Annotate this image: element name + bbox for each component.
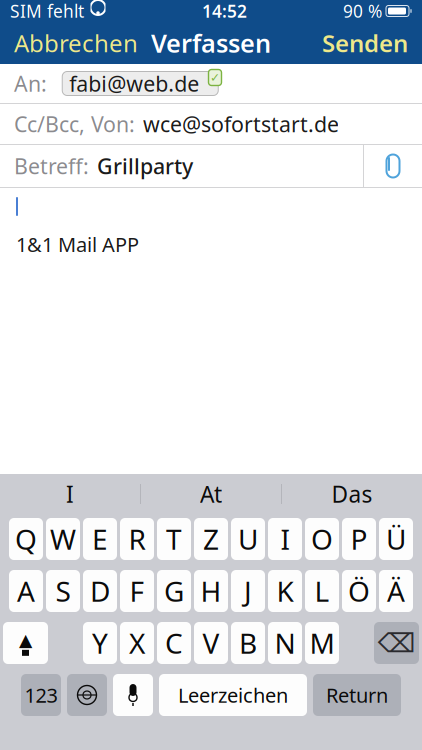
button[interactable]: Anhang hinzufügen	[364, 145, 422, 187]
button[interactable]: Cc/Bcc, Von:	[0, 104, 422, 144]
button[interactable]: Ü	[379, 518, 413, 560]
staticText: Z	[203, 520, 219, 558]
button[interactable]: Ä	[379, 570, 413, 612]
button[interactable]: Abbrechen	[0, 22, 152, 64]
staticText: Leerzeichen	[178, 682, 288, 708]
staticText: F	[129, 572, 144, 610]
button[interactable]: I	[0, 474, 140, 514]
staticText: U	[238, 520, 258, 558]
staticText: SIM fehlt	[10, 0, 84, 22]
button[interactable]: D	[83, 570, 117, 612]
button[interactable]: W	[46, 518, 80, 560]
button[interactable]: T	[157, 518, 191, 560]
button[interactable]: R	[120, 518, 154, 560]
button[interactable]: U	[231, 518, 265, 560]
staticText: V	[202, 624, 219, 662]
staticText: I	[280, 520, 289, 558]
button[interactable]: Umschalt	[3, 622, 48, 664]
staticText: Grillparty	[97, 152, 193, 180]
staticText: 123	[24, 682, 57, 708]
staticText: Abbrechen	[14, 27, 138, 59]
staticText: Cc/Bcc, Von:	[14, 110, 135, 138]
staticText: B	[239, 624, 257, 662]
staticText: ⌫	[377, 628, 415, 658]
button[interactable]: Return	[313, 674, 401, 716]
button[interactable]: O	[305, 518, 339, 560]
staticText: Ö	[348, 572, 370, 610]
button[interactable]: S	[46, 570, 80, 612]
staticText: Ä	[387, 572, 405, 610]
button[interactable]: K	[268, 570, 302, 612]
button[interactable]: Ö	[342, 570, 376, 612]
button[interactable]: F	[120, 570, 154, 612]
staticText: Betreff:	[14, 152, 89, 180]
button[interactable]: B	[231, 622, 265, 664]
button[interactable]: E	[83, 518, 117, 560]
staticText: I	[66, 479, 74, 509]
staticText: S	[55, 572, 70, 610]
staticText: An:	[14, 69, 47, 98]
button[interactable]: V	[194, 622, 228, 664]
staticText: M	[309, 624, 334, 662]
staticText: 90 %	[343, 0, 382, 22]
staticText: H	[200, 572, 221, 610]
staticText: Return	[326, 682, 388, 708]
staticText: Y	[92, 624, 108, 662]
staticText: 14:52	[202, 0, 247, 22]
staticText: ▲	[19, 630, 32, 650]
button[interactable]: Betreff:	[0, 145, 363, 187]
staticText: wce@sofortstart.de	[143, 110, 339, 138]
staticText: K	[276, 572, 293, 610]
staticText: A	[17, 572, 35, 610]
button[interactable]: Leerzeichen	[159, 674, 307, 716]
button[interactable]: An:	[0, 64, 422, 103]
button[interactable]: A	[9, 570, 43, 612]
staticText: R	[128, 520, 145, 558]
staticText: T	[166, 520, 182, 558]
staticText: Ü	[386, 520, 406, 558]
button[interactable]: L	[305, 570, 339, 612]
staticText: G	[164, 572, 184, 610]
button[interactable]: X	[120, 622, 154, 664]
button[interactable]: J	[231, 570, 265, 612]
staticText: ✓	[210, 71, 220, 84]
staticText: Q	[15, 520, 37, 558]
button[interactable]: Senden	[308, 22, 422, 64]
button[interactable]: Y	[83, 622, 117, 664]
staticText: O	[311, 520, 333, 558]
staticText: E	[92, 520, 108, 558]
staticText: W	[50, 520, 76, 558]
button[interactable]: H	[194, 570, 228, 612]
staticText: 1&1 Mail APP	[16, 231, 139, 258]
staticText: J	[244, 572, 252, 610]
staticText: Verfassen	[151, 26, 271, 60]
staticText: Senden	[322, 27, 408, 59]
staticText: N	[274, 624, 295, 662]
button[interactable]: At	[141, 474, 281, 514]
button[interactable]: C	[157, 622, 191, 664]
button[interactable]: N	[268, 622, 302, 664]
button[interactable]: P	[342, 518, 376, 560]
staticText: X	[129, 624, 145, 662]
button[interactable]: I	[268, 518, 302, 560]
button[interactable]: 123	[21, 674, 61, 716]
staticText: D	[90, 572, 110, 610]
button[interactable]: Z	[194, 518, 228, 560]
button[interactable]: G	[157, 570, 191, 612]
button[interactable]: M	[305, 622, 339, 664]
staticText: C	[165, 624, 183, 662]
button[interactable]: Das	[282, 474, 422, 514]
staticText: P	[350, 520, 367, 558]
button[interactable]: Tastatur wechseln	[67, 674, 107, 716]
staticText: fabi@web.de	[69, 69, 211, 98]
staticText: L	[314, 572, 329, 610]
button[interactable]: Diktieren	[113, 674, 153, 716]
staticText: Das	[331, 479, 372, 509]
button[interactable]: Löschen	[374, 622, 419, 664]
staticText: At	[200, 479, 222, 509]
button[interactable]: Q	[9, 518, 43, 560]
